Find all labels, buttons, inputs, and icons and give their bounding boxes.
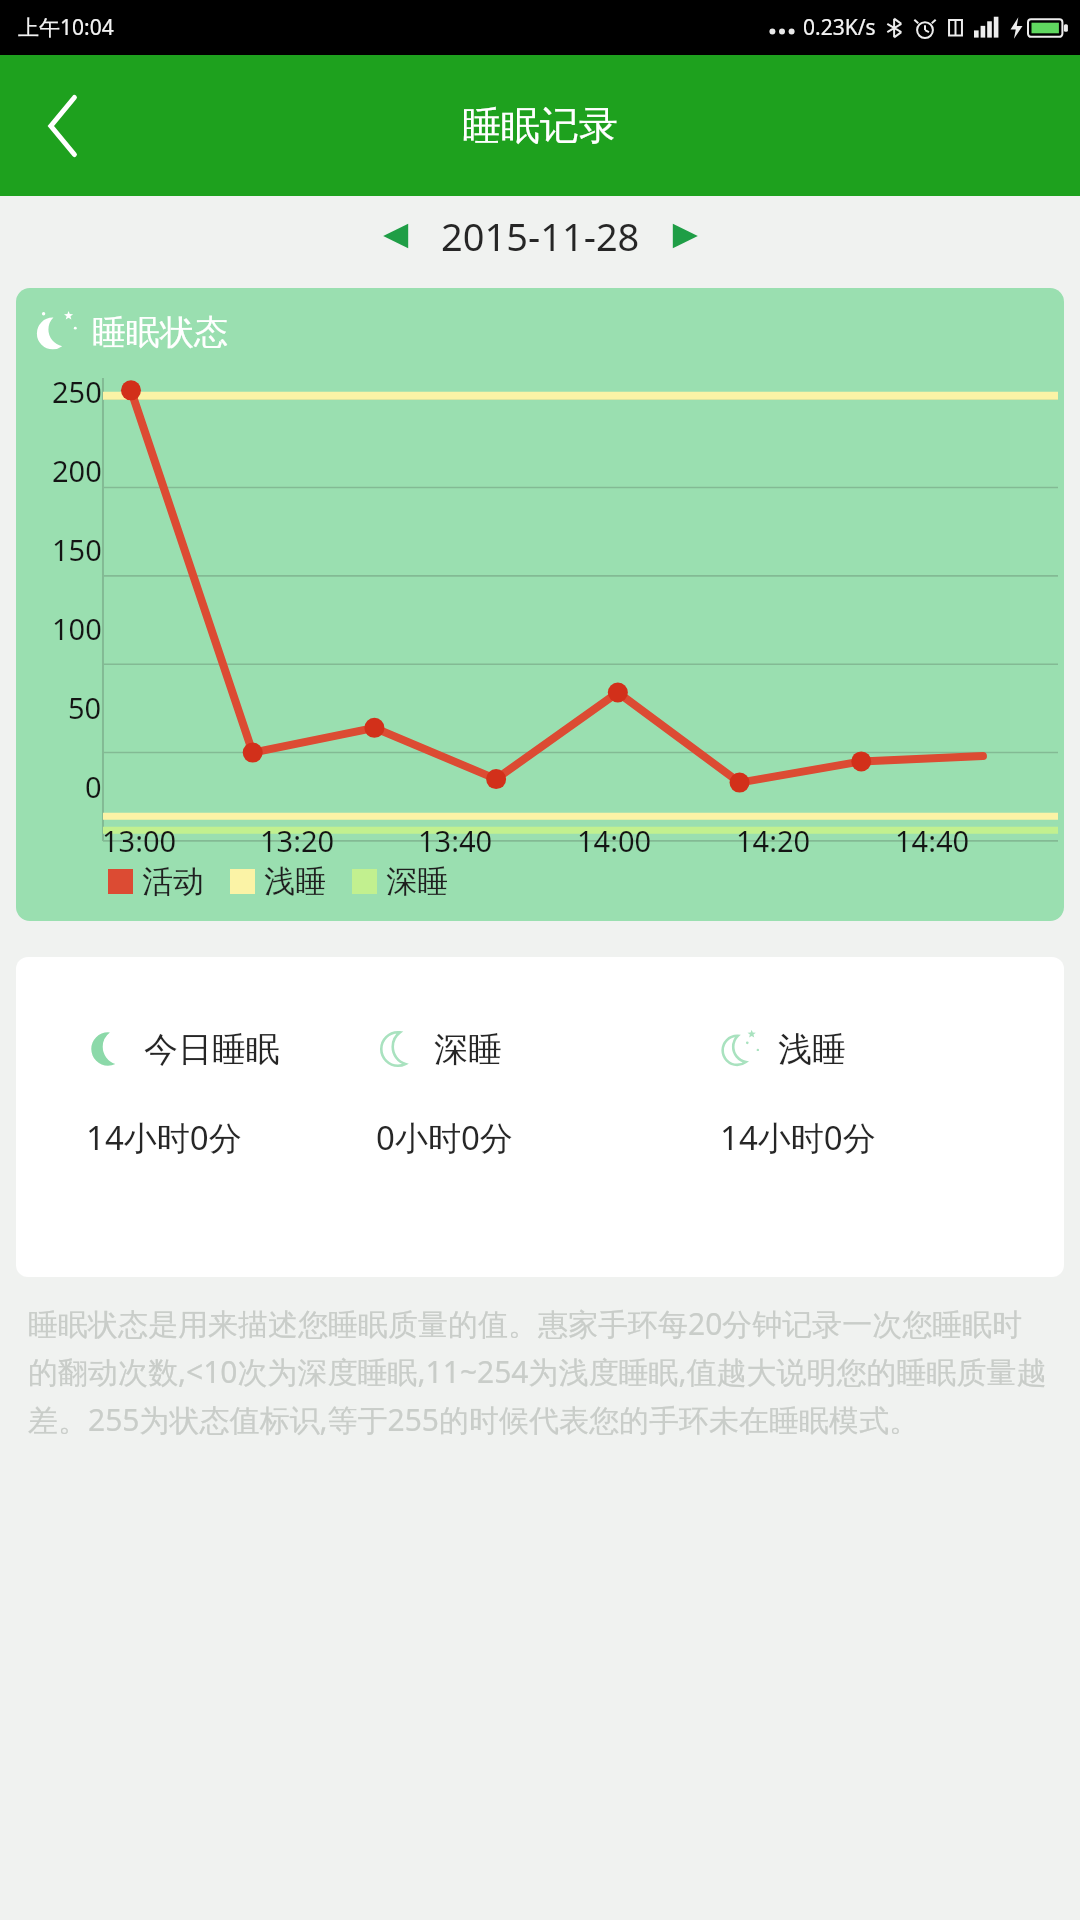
staticText: 13:20 [260,821,335,860]
button[interactable]: Previous day [363,203,429,269]
staticText: 深睡 [386,862,448,901]
staticText: 13:00 [102,821,177,860]
button[interactable]: 今日睡眠 [16,957,1064,1277]
staticText: 0.23K/s [803,13,876,42]
staticText: 200 [52,451,102,490]
staticText: 14:20 [736,821,811,860]
staticText: 13:40 [418,821,493,860]
staticText: 14小时0分 [720,1115,876,1160]
staticText: 睡眠记录 [462,101,618,150]
staticText: 14小时0分 [86,1115,242,1160]
staticText: 250 [52,372,102,411]
staticText: 上午10:04 [18,13,114,42]
staticText: 0小时0分 [376,1115,513,1160]
staticText: 50 [68,688,102,727]
staticText: 睡眠状态 [92,311,228,354]
staticText: 今日睡眠 [144,1028,280,1071]
staticText: 活动 [142,862,204,901]
staticText: 100 [52,609,102,648]
staticText: 浅睡 [264,862,326,901]
staticText: 睡眠状态是用来描述您睡眠质量的值。惠家手环每20分钟记录一次您睡眠时的翻动次数,… [28,1303,1052,1440]
staticText: 150 [52,530,102,569]
staticText: 14:00 [577,821,652,860]
button[interactable]: Back [20,83,106,169]
staticText: 深睡 [434,1028,502,1071]
staticText: 2015-11-28 [441,210,640,262]
button[interactable]: 睡眠状态 [16,288,1064,921]
staticText: 浅睡 [778,1028,846,1071]
staticText: 0 [85,767,102,806]
button[interactable]: Next day [652,203,718,269]
staticText: 14:40 [895,821,970,860]
